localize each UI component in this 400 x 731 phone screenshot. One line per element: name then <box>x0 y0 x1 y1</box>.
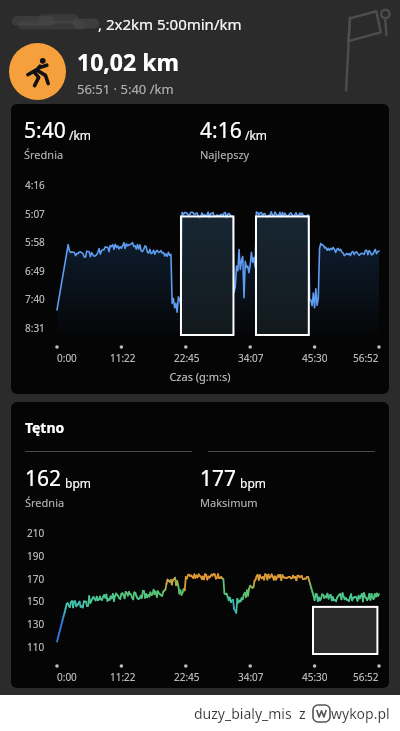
staticText: 22:45 <box>174 351 200 365</box>
staticText: 56:51 · 5:40 /km <box>77 80 174 98</box>
staticText: , 2x2km 5:00min/km <box>98 14 242 34</box>
staticText: Średnia <box>25 495 65 510</box>
button[interactable]: Running activity <box>9 43 66 100</box>
staticText: 5:58 <box>25 235 45 249</box>
button[interactable]: 5:40 <box>11 104 389 394</box>
staticText: 4:16 <box>25 178 45 192</box>
staticText: 190 <box>27 549 45 563</box>
staticText: bpm <box>240 475 266 491</box>
staticText: /km <box>245 127 268 143</box>
staticText: 56:52 <box>353 670 379 684</box>
staticText: 10,02 km <box>77 46 179 77</box>
staticText: Najlepszy <box>200 147 250 162</box>
button[interactable]: Tętno <box>11 402 389 688</box>
staticText: 5:40 <box>24 116 66 145</box>
staticText: Średnia <box>24 147 64 162</box>
staticText: 8:31 <box>25 321 45 335</box>
staticText: 34:07 <box>238 351 264 365</box>
staticText: 7:40 <box>25 292 45 306</box>
staticText: Tętno <box>25 418 65 437</box>
staticText: 170 <box>27 572 45 586</box>
staticText: 22:45 <box>174 670 200 684</box>
staticText: 210 <box>27 526 45 540</box>
staticText: 5:07 <box>25 207 45 221</box>
staticText: 0:00 <box>57 670 77 684</box>
staticText: 110 <box>27 640 45 654</box>
staticText: Maksimum <box>200 495 258 510</box>
staticText: bpm <box>65 475 91 491</box>
staticText: 45:30 <box>302 670 328 684</box>
staticText: 150 <box>27 594 45 608</box>
staticText: Czas (g:m:s) <box>11 369 389 384</box>
staticText: 11:22 <box>110 351 136 365</box>
staticText: 56:52 <box>353 351 379 365</box>
button[interactable]: Goal flag <box>336 6 392 94</box>
staticText: 0:00 <box>57 351 77 365</box>
staticText: 34:07 <box>238 670 264 684</box>
staticText: 4:16 <box>200 116 242 145</box>
staticText: 162 <box>25 464 62 493</box>
staticText: 11:22 <box>110 670 136 684</box>
staticText: 130 <box>27 617 45 631</box>
staticText: /km <box>69 127 92 143</box>
staticText: 45:30 <box>302 351 328 365</box>
staticText: 6:49 <box>25 264 45 278</box>
staticText: duzy_bialy_mis z <box>194 704 306 723</box>
staticText: 177 <box>200 464 237 493</box>
staticText: wykop.pl <box>331 704 390 723</box>
